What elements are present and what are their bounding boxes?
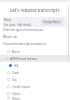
staticText: None [12, 50, 20, 54]
button[interactable]: Cash [0, 69, 70, 76]
staticText: Tax [12, 78, 17, 82]
staticText: APR Record Invoice [10, 57, 38, 61]
staticText: Select the type of transcript you [3, 28, 44, 32]
staticText: Choose the transcript you want to [3, 42, 46, 46]
button[interactable]: APR Record Invoice [0, 55, 70, 62]
staticText: Credit report [12, 85, 31, 89]
staticText: Let's request transcripts [10, 7, 60, 13]
staticText: Name [4, 18, 12, 22]
button[interactable]: Bill [0, 62, 70, 69]
button[interactable]: Tax [0, 76, 70, 83]
button[interactable]: Credit report [0, 83, 70, 90]
button[interactable]: Change Name [41, 19, 63, 25]
staticText: What to do [3, 35, 17, 39]
staticText: Cash [12, 71, 19, 75]
button[interactable]: None [0, 48, 70, 55]
staticText: Lee Jones Edit details [4, 23, 31, 27]
button[interactable]: Claim [0, 90, 70, 97]
staticText: Claim [12, 92, 20, 96]
staticText: Bill [14, 64, 19, 68]
staticText: Change Name [43, 20, 61, 24]
staticText: Other [12, 97, 21, 100]
button[interactable]: Other [0, 97, 70, 100]
